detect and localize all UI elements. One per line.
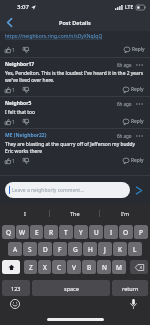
- staticText: R: [49, 228, 54, 237]
- staticText: K: [118, 245, 123, 254]
- button[interactable]: R: [44, 225, 58, 239]
- staticText: Neighbor17: [5, 61, 35, 68]
- button[interactable]: More options: [135, 100, 144, 107]
- button[interactable]: return: [112, 280, 148, 296]
- staticText: They are blasting at the quarry off of J…: [5, 141, 144, 155]
- staticText: I felt that too: [5, 109, 144, 116]
- button[interactable]: Reply: [123, 85, 144, 94]
- button[interactable]: Shift: [2, 260, 20, 274]
- button[interactable]: F: [53, 242, 67, 256]
- staticText: Leave a neighborly comment...: [12, 187, 85, 194]
- staticText: I: [110, 228, 113, 237]
- button[interactable]: https://neighbors.ring.com/n/sDyXNqIqQ: [5, 33, 103, 40]
- staticText: D: [43, 245, 48, 254]
- button[interactable]: space: [32, 280, 110, 296]
- staticText: N: [102, 263, 107, 272]
- button[interactable]: More options: [135, 61, 144, 68]
- button[interactable]: A: [8, 242, 22, 256]
- staticText: Reply: [131, 157, 144, 164]
- button[interactable]: Z: [24, 260, 37, 274]
- button[interactable]: Dislike: [23, 117, 29, 126]
- button[interactable]: T: [59, 225, 73, 239]
- button[interactable]: 1: [5, 85, 15, 94]
- staticText: ME (Neighbor22): [5, 132, 47, 139]
- button[interactable]: N: [97, 260, 111, 274]
- button[interactable]: Voice input: [125, 296, 141, 312]
- button[interactable]: G: [68, 242, 82, 256]
- button[interactable]: Reply: [124, 45, 145, 54]
- staticText: 123: [11, 285, 21, 292]
- staticText: J: [104, 245, 106, 254]
- button[interactable]: U: [89, 225, 103, 239]
- staticText: Y: [79, 228, 83, 237]
- button[interactable]: O: [119, 225, 133, 239]
- button[interactable]: J: [98, 242, 112, 256]
- button[interactable]: 123: [2, 280, 30, 296]
- staticText: E: [35, 228, 39, 237]
- button[interactable]: S: [23, 242, 37, 256]
- staticText: The: [70, 210, 80, 217]
- button[interactable]: I: [104, 225, 118, 239]
- staticText: Z: [29, 263, 33, 272]
- staticText: I'm: [121, 210, 130, 217]
- button[interactable]: 1: [5, 117, 15, 126]
- button[interactable]: B: [82, 260, 96, 274]
- button[interactable]: 1: [5, 45, 15, 54]
- button[interactable]: Send comment: [130, 182, 148, 198]
- button[interactable]: The: [50, 204, 100, 222]
- button[interactable]: I: [0, 204, 50, 222]
- button[interactable]: V: [67, 260, 81, 274]
- staticText: Reply: [131, 86, 144, 93]
- button[interactable]: K: [113, 242, 127, 256]
- staticText: F: [58, 245, 62, 254]
- button[interactable]: Q: [2, 225, 15, 239]
- staticText: 1: [12, 87, 15, 93]
- staticText: Q: [6, 228, 12, 237]
- staticText: V: [72, 263, 76, 272]
- staticText: G: [73, 245, 78, 254]
- button[interactable]: I'm: [100, 204, 150, 222]
- staticText: H: [88, 245, 93, 254]
- button[interactable]: Y: [74, 225, 88, 239]
- staticText: P: [139, 228, 143, 237]
- button[interactable]: M: [112, 260, 126, 274]
- staticText: 6h ago: [117, 62, 132, 68]
- button[interactable]: Dislike: [23, 156, 29, 165]
- staticText: 6h ago: [117, 133, 132, 139]
- staticText: LTE: [125, 4, 134, 11]
- button[interactable]: Emoji keyboard: [7, 296, 23, 312]
- staticText: X: [43, 263, 47, 272]
- button[interactable]: D: [38, 242, 52, 256]
- staticText: Post Details: [59, 19, 91, 26]
- button[interactable]: E: [30, 225, 43, 239]
- button[interactable]: X: [38, 260, 51, 274]
- button[interactable]: Reply: [123, 117, 144, 126]
- staticText: 1: [12, 47, 15, 53]
- button[interactable]: Dislike: [23, 45, 29, 54]
- button[interactable]: More options: [135, 132, 144, 139]
- button[interactable]: P: [134, 225, 148, 239]
- staticText: C: [57, 263, 62, 272]
- staticText: U: [94, 228, 99, 237]
- button[interactable]: C: [52, 260, 66, 274]
- staticText: O: [123, 228, 129, 237]
- staticText: Yes, Pendelton. This is the loudest I've…: [5, 70, 144, 84]
- staticText: return: [122, 285, 139, 292]
- button[interactable]: Dislike: [23, 85, 29, 94]
- button[interactable]: Leave a neighborly comment...: [5, 182, 130, 198]
- button[interactable]: W: [16, 225, 29, 239]
- button[interactable]: Reply: [123, 156, 144, 165]
- staticText: space: [64, 285, 79, 292]
- staticText: I: [24, 210, 26, 217]
- button[interactable]: L: [128, 242, 142, 256]
- staticText: 3:07: [17, 3, 29, 11]
- button[interactable]: Back: [0, 14, 18, 31]
- button[interactable]: Backspace: [130, 260, 148, 274]
- staticText: B: [87, 263, 92, 272]
- button[interactable]: 1: [5, 156, 15, 165]
- button[interactable]: H: [83, 242, 97, 256]
- staticText: Neighbor5: [5, 100, 32, 107]
- staticText: W: [19, 228, 26, 237]
- staticText: A: [13, 245, 18, 254]
- staticText: L: [133, 245, 137, 254]
